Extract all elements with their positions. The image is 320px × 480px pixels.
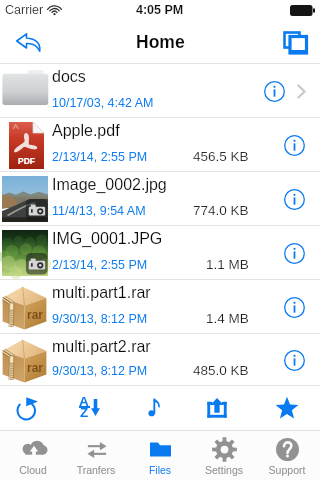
button[interactable]: Copy [273, 20, 317, 64]
staticText: 2/13/14, 2:55 PM [52, 258, 148, 272]
button[interactable]: Favorites [265, 386, 309, 430]
staticText: multi.part1.rar [52, 284, 151, 302]
button[interactable]: rar [0, 280, 320, 334]
staticText: 485.0 KB [193, 363, 249, 378]
staticText: rar [27, 308, 44, 321]
button[interactable]: Info [272, 226, 316, 280]
staticText: Tranfers [65, 464, 127, 476]
staticText: Files [129, 464, 191, 476]
staticText: PDF [9, 156, 44, 165]
staticText: Apple.pdf [52, 122, 120, 140]
button[interactable]: Files [129, 431, 191, 480]
button[interactable]: Back [2, 20, 46, 64]
staticText: 456.5 KB [193, 149, 249, 164]
button[interactable]: Music [132, 386, 176, 430]
button[interactable]: Info [272, 172, 316, 226]
button[interactable]: Info [272, 118, 316, 172]
button[interactable]: Refresh [5, 386, 49, 430]
staticText: A [79, 394, 89, 409]
button[interactable]: Info [272, 334, 316, 386]
button[interactable]: Support [256, 431, 318, 480]
staticText: Image_0002.jpg [52, 176, 167, 194]
staticText: IMG_0001.JPG [52, 230, 163, 248]
staticText: 774.0 KB [193, 203, 249, 218]
button[interactable]: Cloud [2, 431, 64, 480]
staticText: 1.1 MB [206, 257, 249, 272]
staticText: Support [256, 464, 318, 476]
staticText: 1.4 MB [206, 311, 249, 326]
staticText: Settings [193, 464, 255, 476]
button[interactable]: PDF [0, 118, 320, 172]
button[interactable]: Share [195, 386, 239, 430]
staticText: 11/4/13, 9:54 AM [52, 204, 146, 218]
button[interactable]: Info [272, 280, 316, 334]
button[interactable]: IMG_0001.JPG [0, 226, 320, 280]
button[interactable]: Settings [193, 431, 255, 480]
staticText: 4:05 PM [136, 3, 184, 17]
staticText: multi.part2.rar [52, 338, 151, 356]
button[interactable]: Image_0002.jpg [0, 172, 320, 226]
button[interactable]: Info [254, 64, 294, 118]
staticText: Cloud [2, 464, 64, 476]
button[interactable]: docs [0, 64, 320, 118]
staticText: 10/17/03, 4:42 AM [52, 96, 154, 110]
button[interactable]: rar [0, 334, 320, 386]
button[interactable]: Sort [68, 386, 112, 430]
staticText: Home [136, 32, 185, 52]
button[interactable]: Tranfers [65, 431, 127, 480]
staticText: 9/30/13, 8:12 PM [52, 312, 148, 326]
staticText: Z [80, 405, 89, 420]
staticText: Carrier [5, 3, 44, 17]
staticText: 2/13/14, 2:55 PM [52, 150, 148, 164]
staticText: 9/30/13, 8:12 PM [52, 364, 148, 378]
staticText: docs [52, 68, 86, 86]
staticText: rar [27, 361, 44, 374]
